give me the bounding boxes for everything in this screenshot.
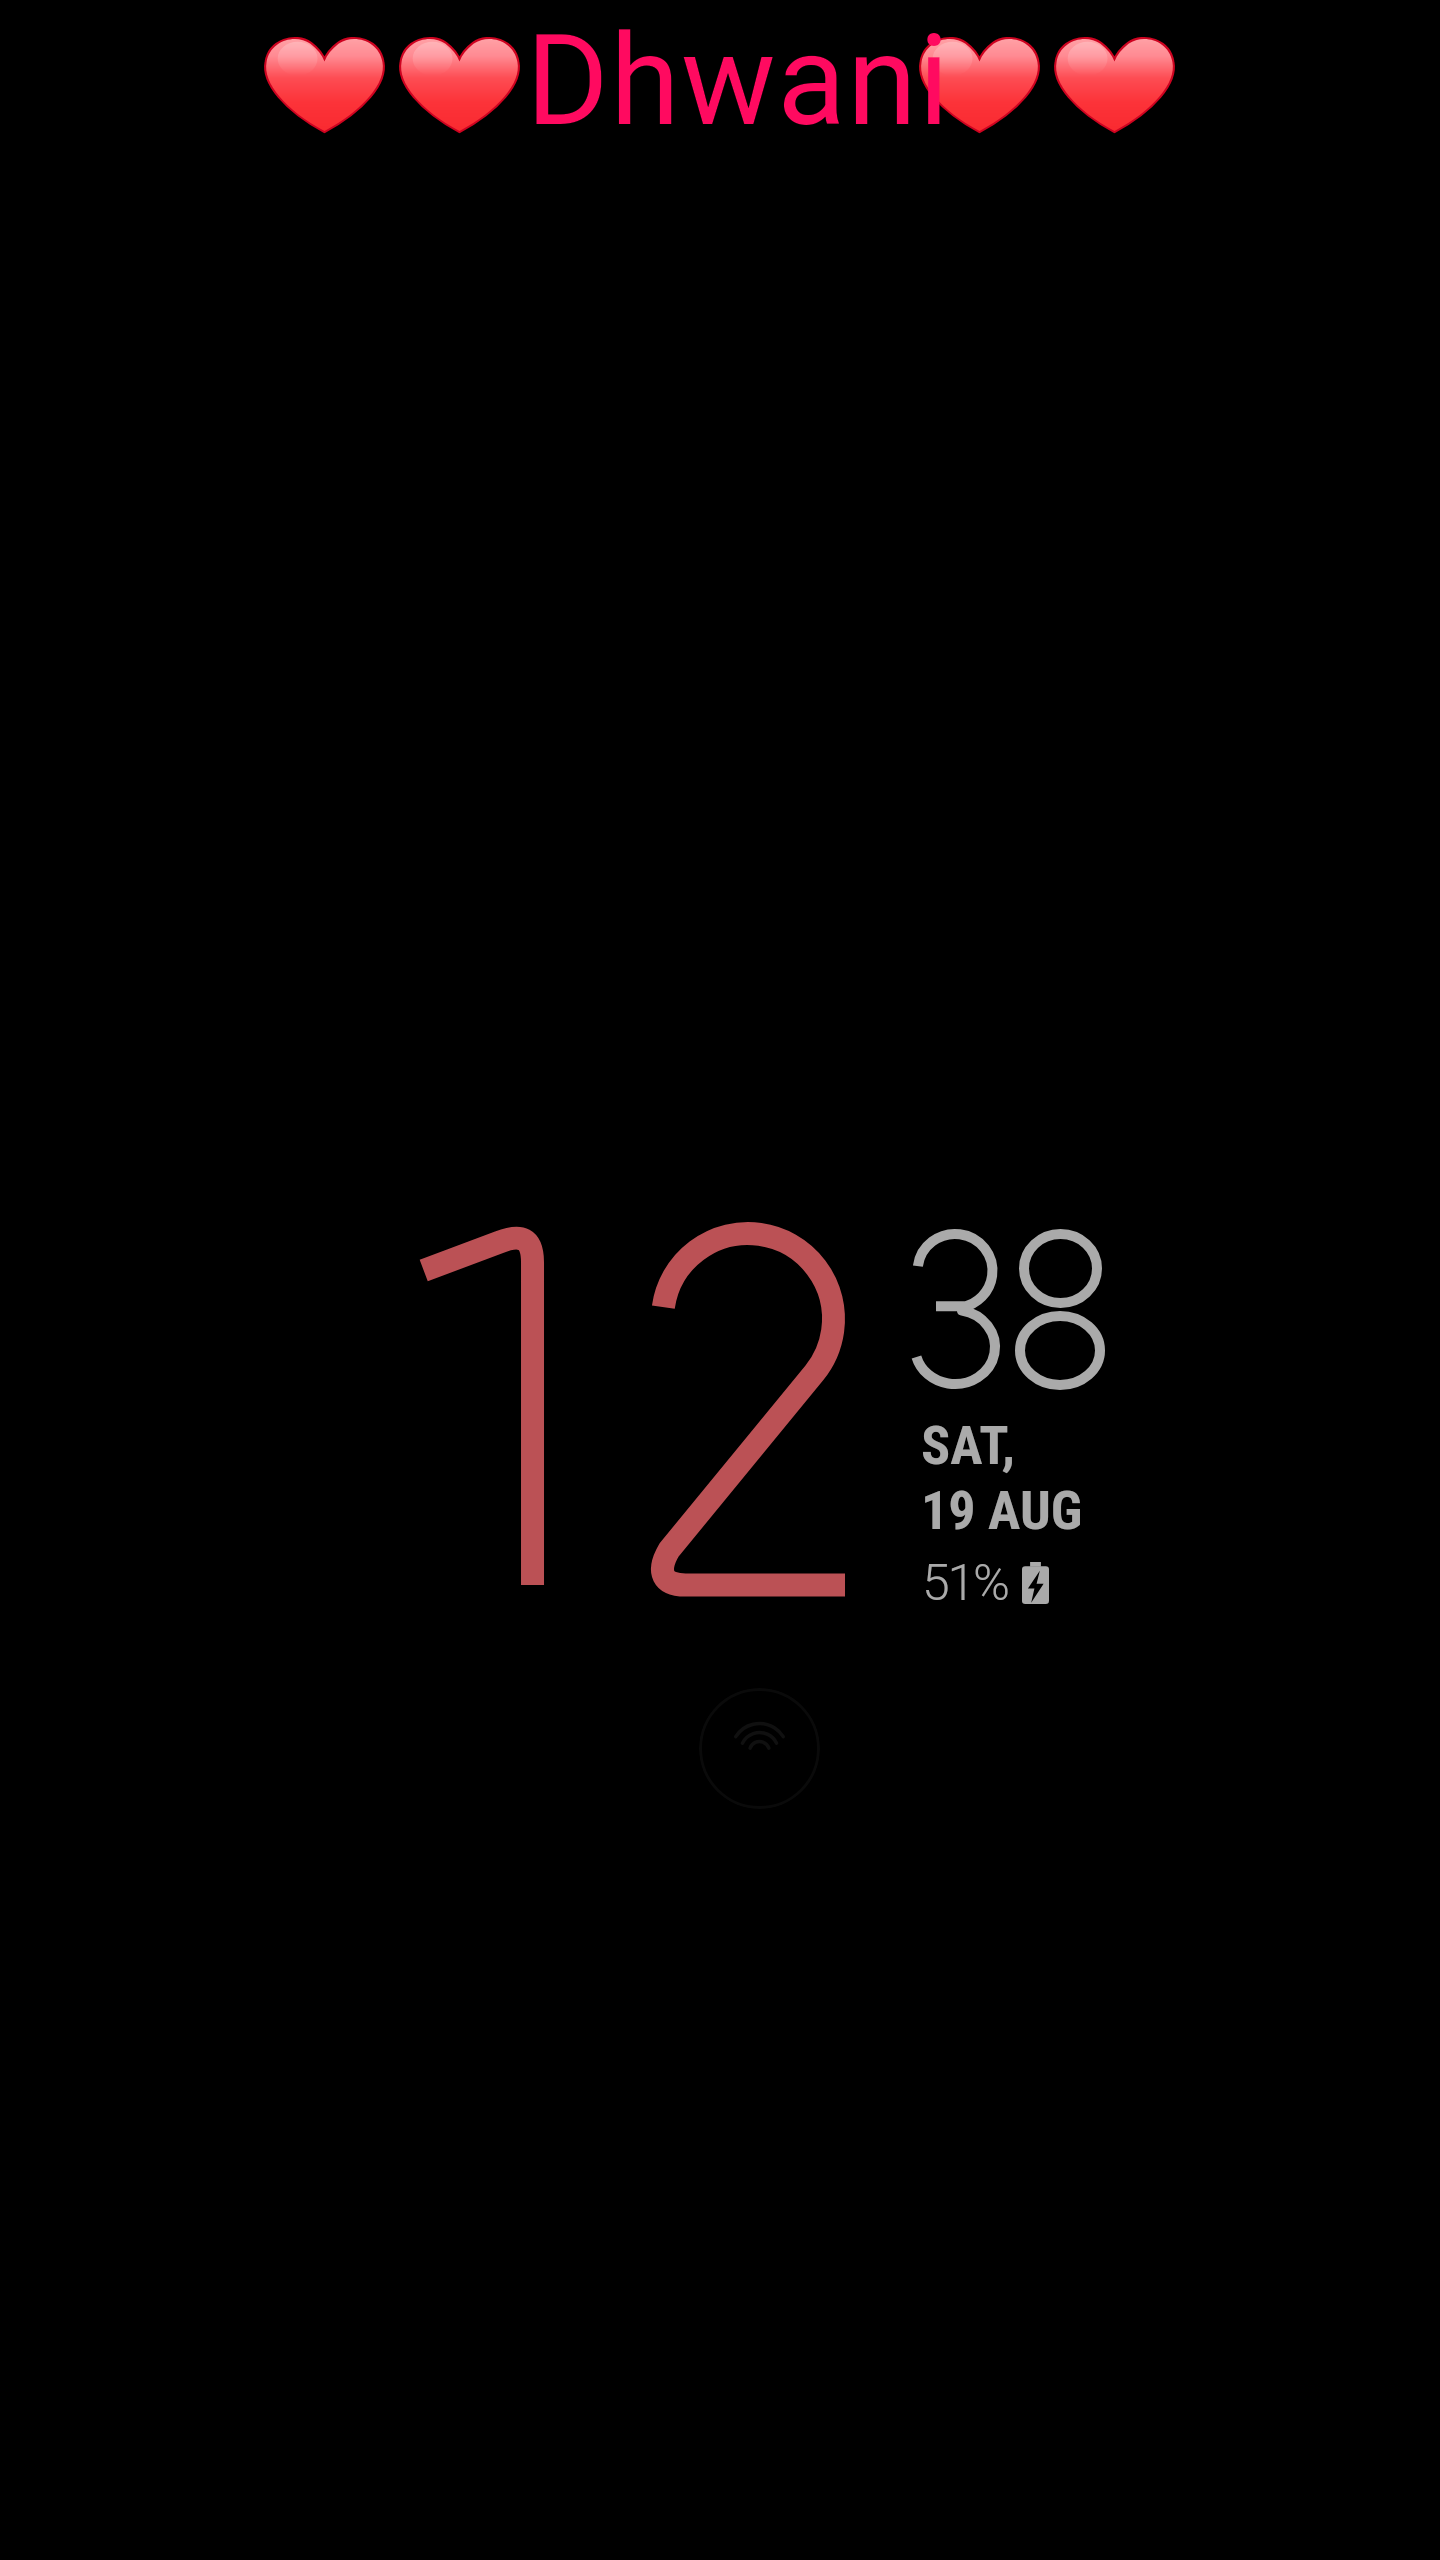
staticText: SAT, [921, 1414, 1016, 1477]
button[interactable]: Unlock with fingerprint [699, 1688, 820, 1809]
button[interactable]: Clock 12:38, Saturday 19 August [400, 1200, 1120, 1620]
staticText: 51% [922, 1554, 1008, 1613]
staticText: 19 AUG [921, 1479, 1083, 1542]
staticText: Dhwani [526, 7, 951, 155]
button[interactable]: Dhwani [0, 0, 1440, 170]
